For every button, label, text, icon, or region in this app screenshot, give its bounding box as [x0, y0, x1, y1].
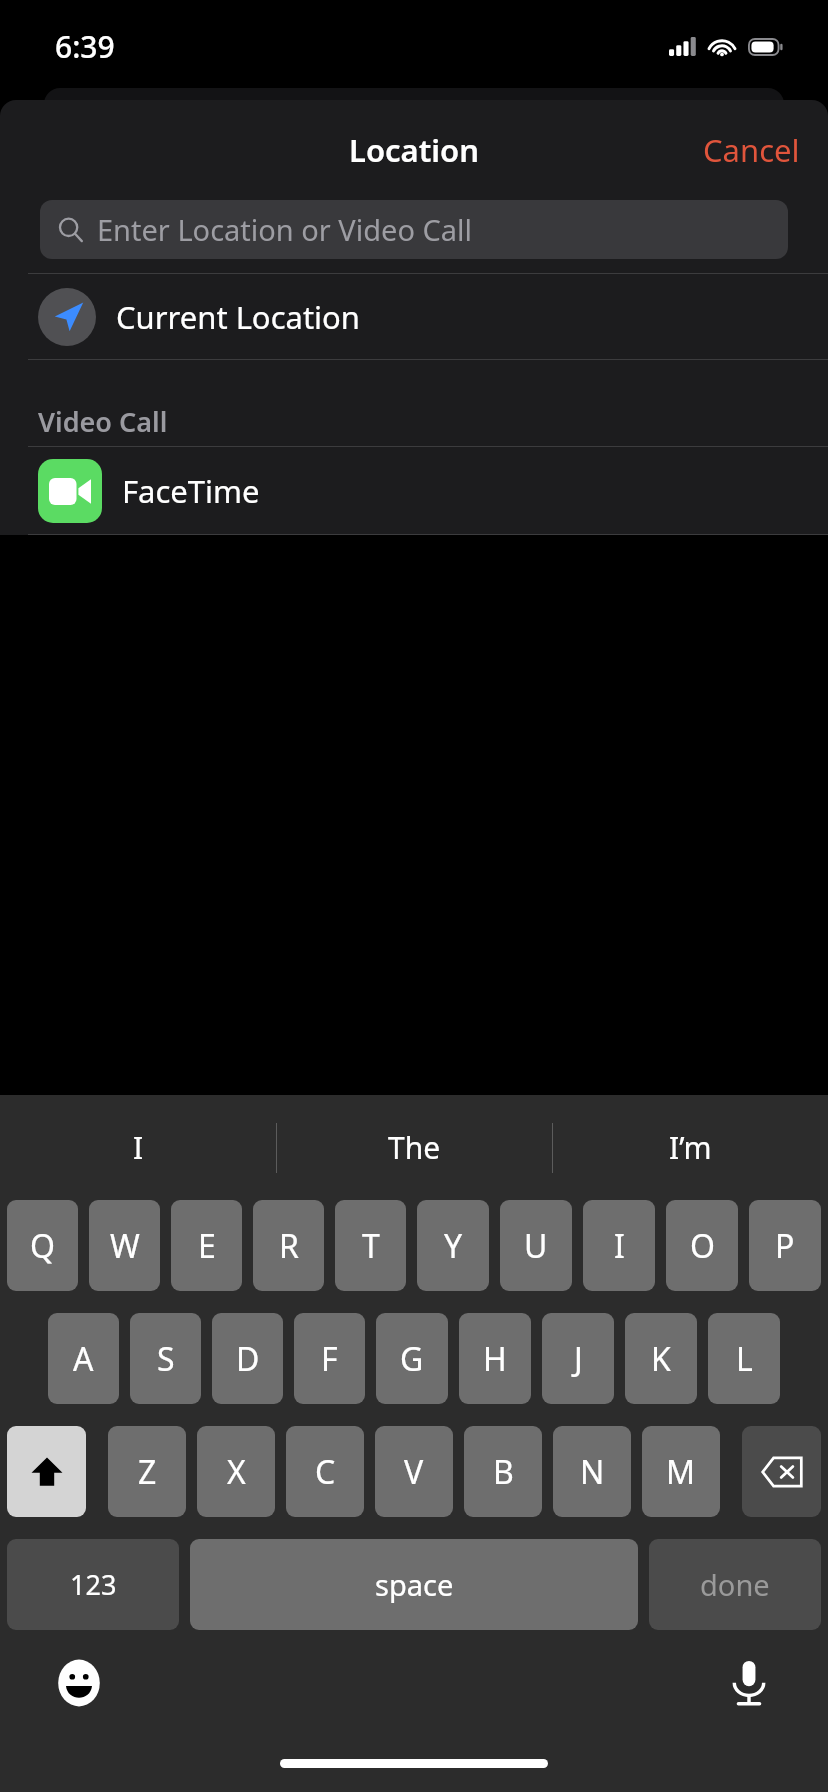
staticText: E [198, 1224, 216, 1268]
staticText: Enter Location or Video Call [97, 210, 473, 249]
button[interactable]: FaceTime [0, 447, 828, 534]
button[interactable]: Cancel [675, 113, 828, 187]
button[interactable]: D [212, 1313, 283, 1404]
button[interactable]: L [708, 1313, 780, 1404]
staticText: FaceTime [122, 470, 260, 512]
staticText: Location [349, 129, 480, 171]
staticText: T [362, 1224, 380, 1268]
staticText: N [580, 1450, 605, 1494]
staticText: L [736, 1337, 753, 1381]
staticText: A [73, 1337, 94, 1381]
button[interactable]: S [130, 1313, 201, 1404]
button[interactable]: Enter Location or Video Call [40, 200, 788, 259]
staticText: K [651, 1337, 671, 1381]
staticText: done [700, 1565, 770, 1604]
button[interactable]: T [335, 1200, 406, 1291]
button[interactable]: Z [108, 1426, 186, 1517]
button[interactable]: The [277, 1095, 552, 1200]
staticText: M [666, 1450, 696, 1494]
button[interactable]: K [625, 1313, 697, 1404]
staticText: J [574, 1337, 583, 1381]
button[interactable]: R [253, 1200, 324, 1291]
button[interactable]: done [649, 1539, 821, 1630]
button[interactable]: U [500, 1200, 572, 1291]
button[interactable]: Dictation [722, 1656, 776, 1710]
button[interactable]: J [542, 1313, 614, 1404]
button[interactable]: I [0, 1095, 276, 1200]
staticText: S [157, 1337, 175, 1381]
staticText: 6:39 [55, 26, 115, 67]
staticText: D [236, 1337, 260, 1381]
button[interactable]: I [583, 1200, 655, 1291]
staticText: The [388, 1127, 441, 1168]
staticText: I [133, 1127, 144, 1168]
button[interactable]: 123 [7, 1539, 179, 1630]
button[interactable]: A [48, 1313, 119, 1404]
button[interactable]: Y [417, 1200, 489, 1291]
staticText: V [404, 1450, 424, 1494]
staticText: Cancel [703, 129, 800, 171]
staticText: I [614, 1224, 625, 1268]
button[interactable]: H [459, 1313, 531, 1404]
staticText: O [690, 1224, 715, 1268]
button[interactable]: Shift [7, 1426, 86, 1517]
staticText: C [315, 1450, 336, 1494]
button[interactable]: W [89, 1200, 160, 1291]
button[interactable]: M [642, 1426, 720, 1517]
button[interactable]: P [749, 1200, 821, 1291]
staticText: F [321, 1337, 338, 1381]
button[interactable]: C [286, 1426, 364, 1517]
button[interactable]: Emoji [52, 1656, 106, 1710]
button[interactable]: E [171, 1200, 242, 1291]
staticText: P [775, 1224, 795, 1268]
staticText: 123 [70, 1566, 117, 1603]
button[interactable]: space [190, 1539, 638, 1630]
button[interactable]: N [553, 1426, 631, 1517]
button[interactable]: I’m [553, 1095, 828, 1200]
button[interactable]: O [666, 1200, 738, 1291]
button[interactable]: Q [7, 1200, 78, 1291]
staticText: X [227, 1450, 246, 1494]
button[interactable]: Current Location [0, 274, 828, 359]
staticText: Q [30, 1224, 55, 1268]
staticText: Y [444, 1224, 463, 1268]
button[interactable]: B [464, 1426, 542, 1517]
staticText: I’m [669, 1127, 712, 1168]
staticText: space [375, 1565, 454, 1604]
staticText: B [493, 1450, 514, 1494]
staticText: Z [138, 1450, 157, 1494]
staticText: R [279, 1224, 299, 1268]
staticText: H [483, 1337, 507, 1381]
button[interactable]: F [294, 1313, 365, 1404]
button[interactable]: X [197, 1426, 275, 1517]
staticText: W [110, 1224, 140, 1268]
staticText: G [400, 1337, 424, 1381]
staticText: Video Call [38, 403, 168, 440]
button[interactable]: Backspace [742, 1426, 821, 1517]
button[interactable]: G [376, 1313, 448, 1404]
staticText: U [524, 1224, 548, 1268]
staticText: Current Location [116, 296, 361, 338]
button[interactable]: V [375, 1426, 453, 1517]
